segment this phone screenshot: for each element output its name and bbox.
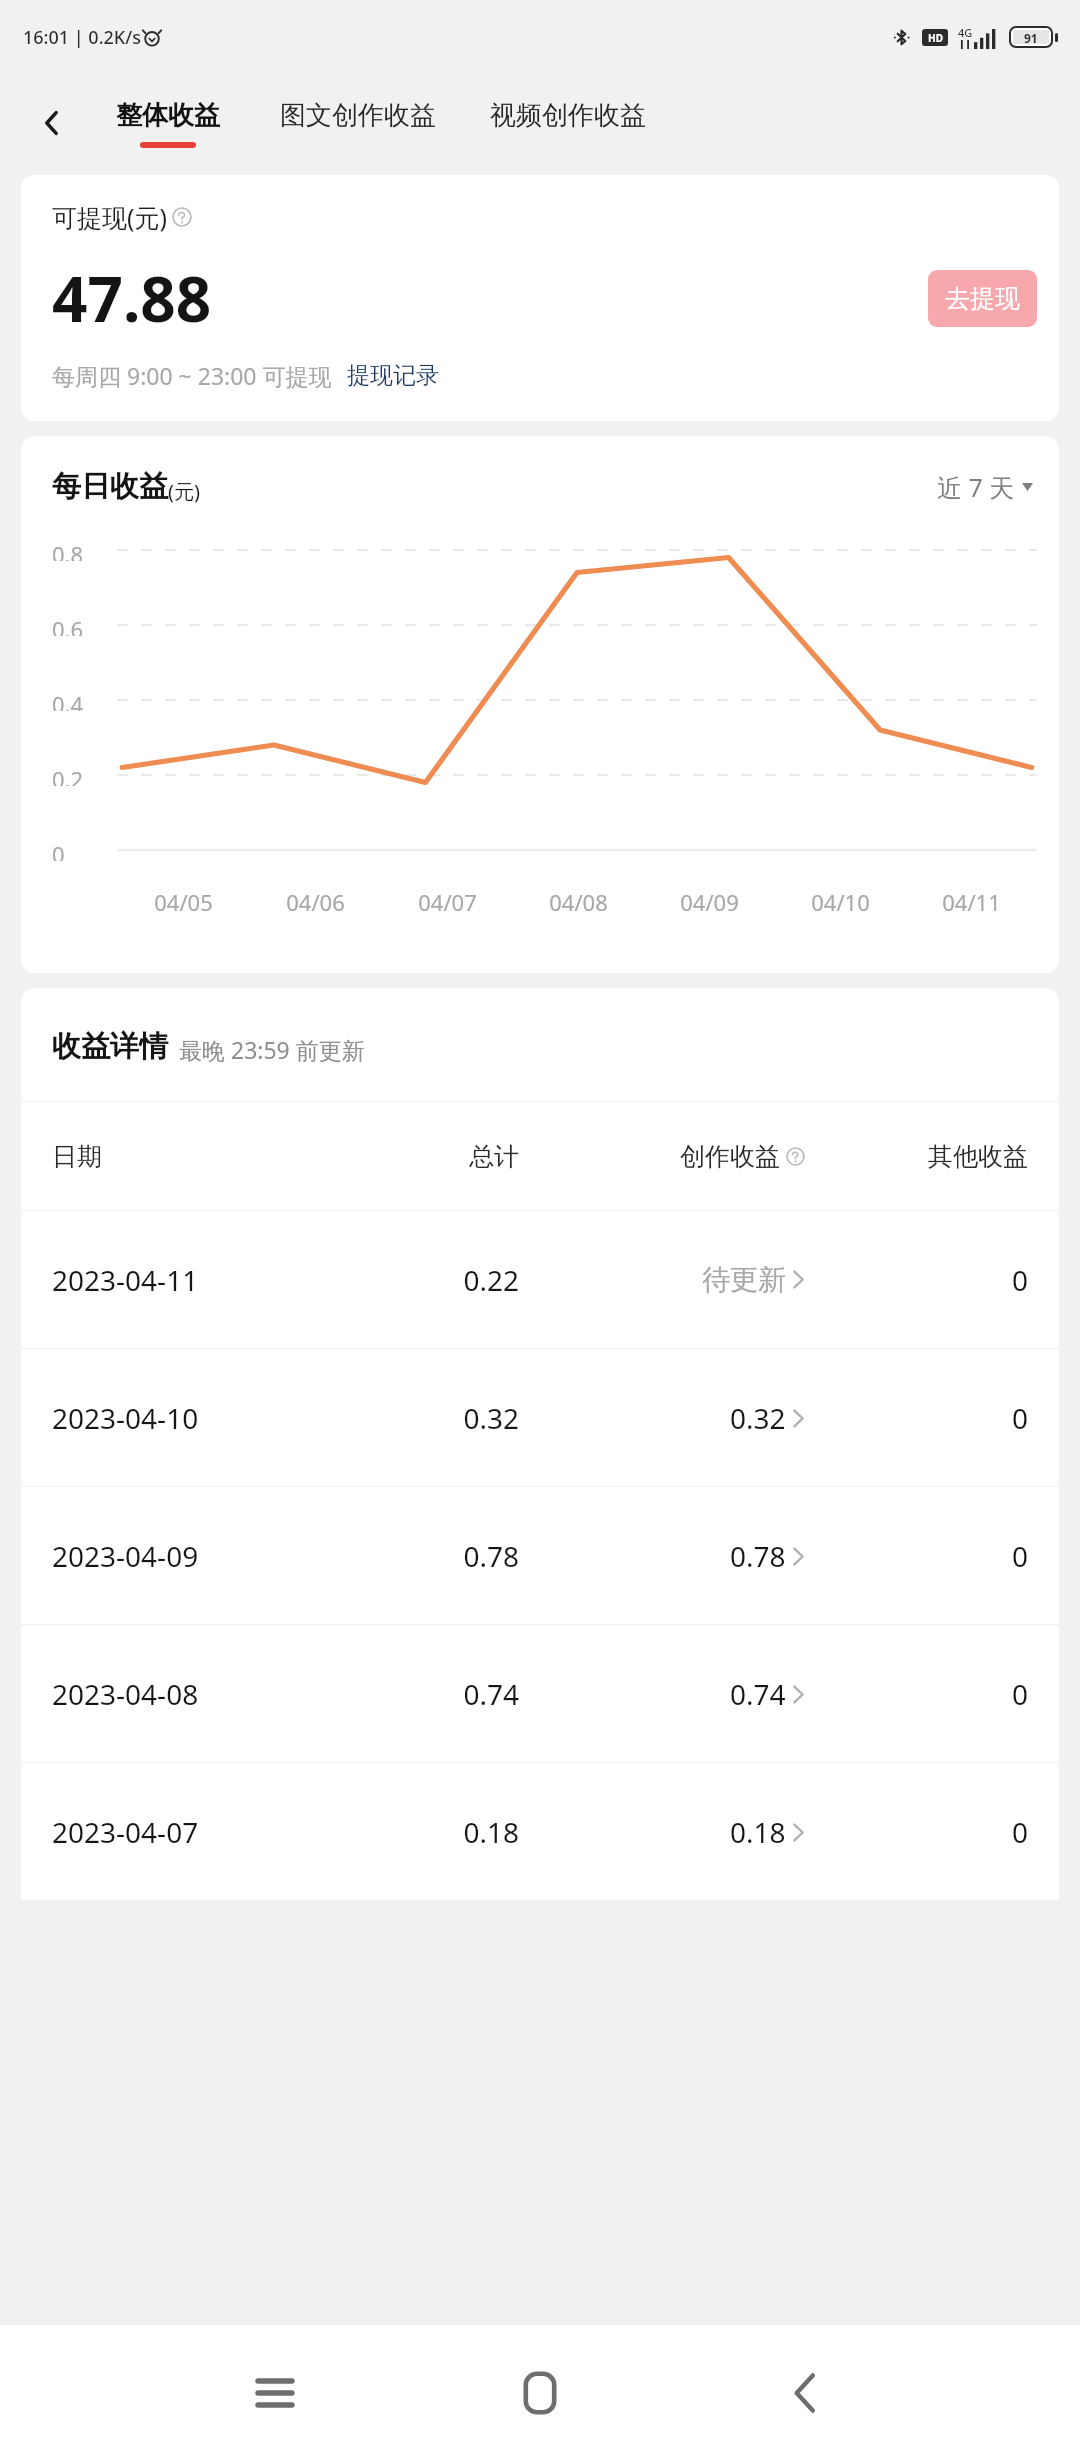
button[interactable]: Recent apps: [230, 2348, 320, 2438]
staticText: 0.6: [52, 614, 84, 636]
staticText: 0.78: [317, 1537, 519, 1575]
staticText: 0: [805, 1261, 1028, 1299]
button[interactable]: 提现记录: [347, 361, 439, 390]
staticText: 0.8: [52, 539, 84, 561]
staticText: 日期: [52, 1141, 317, 1172]
staticText: 提现记录: [347, 361, 439, 390]
staticText: 总计: [317, 1141, 519, 1172]
staticText: 每日收益: [52, 468, 168, 505]
button[interactable]: 2023-04-08: [21, 1625, 1059, 1762]
staticText: 0.18: [730, 1813, 786, 1851]
staticText: 47.88: [52, 256, 212, 340]
staticText: 04/09: [680, 887, 739, 917]
staticText: 待更新: [702, 1262, 786, 1297]
staticText: 0: [805, 1813, 1028, 1851]
staticText: 04/10: [811, 887, 870, 917]
staticText: 0.32: [317, 1399, 519, 1437]
staticText: 04/11: [942, 887, 1001, 917]
staticText: 2023-04-07: [52, 1813, 317, 1851]
staticText: 4G: [958, 25, 973, 40]
staticText: 0.32: [730, 1399, 786, 1437]
staticText: 0: [805, 1537, 1028, 1575]
button[interactable]: 2023-04-09: [21, 1487, 1059, 1624]
button[interactable]: 图文创作收益: [276, 93, 440, 154]
staticText: 2023-04-08: [52, 1675, 317, 1713]
staticText: 0: [52, 839, 65, 861]
staticText: 0: [805, 1399, 1028, 1437]
staticText: 2023-04-09: [52, 1537, 317, 1575]
staticText: 近 7 天: [937, 470, 1015, 504]
staticText: 2023-04-11: [52, 1261, 317, 1299]
staticText: HD: [928, 31, 943, 45]
staticText: (元): [168, 478, 200, 505]
staticText: 0.2: [52, 764, 84, 786]
button[interactable]: 2023-04-11: [21, 1211, 1059, 1348]
button[interactable]: 整体收益: [112, 93, 224, 154]
staticText: 其他收益: [805, 1141, 1028, 1172]
staticText: 04/08: [549, 887, 608, 917]
staticText: 每周四 9:00 ~ 23:00 可提现: [52, 360, 332, 391]
staticText: 收益详情: [52, 1028, 168, 1065]
button[interactable]: Back: [760, 2348, 850, 2438]
button[interactable]: Back: [26, 97, 78, 149]
staticText: 04/06: [286, 887, 345, 917]
staticText: 0.4: [52, 689, 84, 711]
button[interactable]: 2023-04-10: [21, 1349, 1059, 1486]
button[interactable]: 去提现: [928, 270, 1037, 327]
staticText: 图文创作收益: [280, 99, 436, 132]
staticText: 视频创作收益: [490, 99, 646, 132]
button[interactable]: 视频创作收益: [486, 93, 650, 154]
staticText: 0.78: [730, 1537, 786, 1575]
staticText: 可提现(元): [52, 200, 168, 234]
staticText: 91: [1024, 30, 1038, 44]
staticText: 16:01 | 0.2K/s: [23, 25, 141, 50]
button[interactable]: 近 7 天: [937, 470, 1033, 504]
staticText: 0.18: [317, 1813, 519, 1851]
staticText: 创作收益: [680, 1141, 780, 1172]
staticText: 0.74: [730, 1675, 786, 1713]
staticText: 整体收益: [116, 99, 220, 132]
staticText: 2023-04-10: [52, 1399, 317, 1437]
staticText: 04/07: [418, 887, 477, 917]
staticText: 去提现: [945, 283, 1020, 314]
staticText: 最晚 23:59 前更新: [179, 1034, 365, 1065]
staticText: 0.74: [317, 1675, 519, 1713]
button[interactable]: 2023-04-07: [21, 1763, 1059, 1900]
staticText: 04/05: [154, 887, 213, 917]
staticText: 0.22: [317, 1261, 519, 1299]
staticText: 0: [805, 1675, 1028, 1713]
button[interactable]: Home: [495, 2348, 585, 2438]
